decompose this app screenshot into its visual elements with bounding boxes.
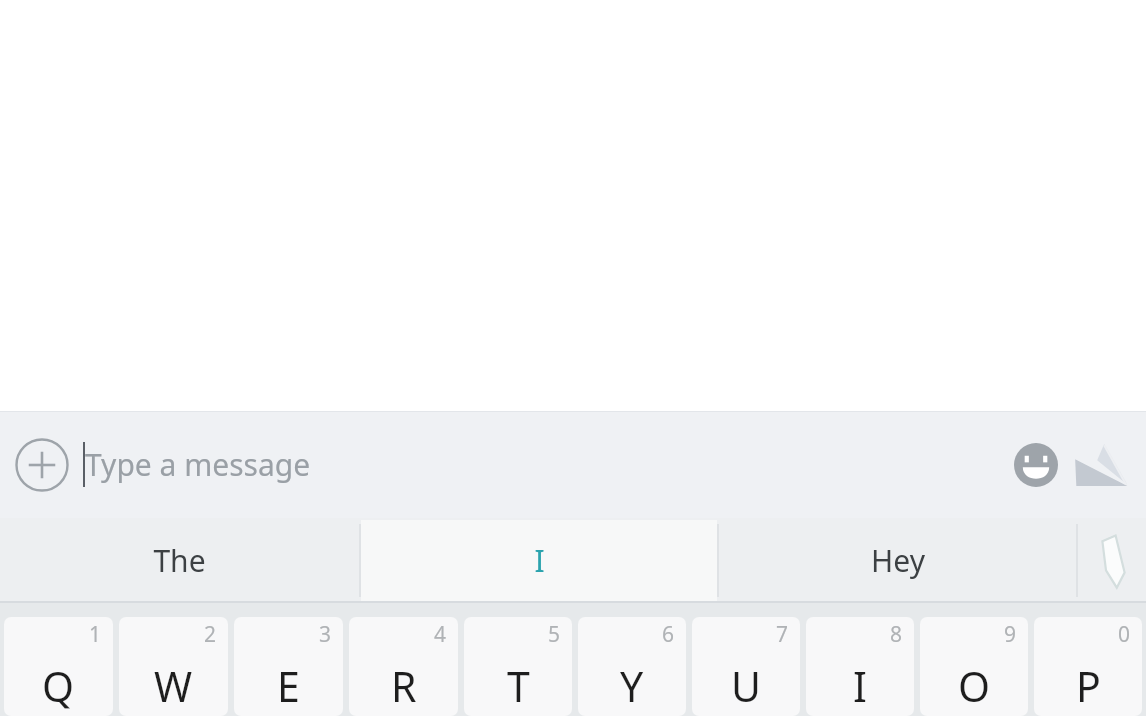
button[interactable]: 0	[1034, 617, 1142, 716]
button[interactable]: Handwriting	[1078, 518, 1146, 603]
staticText: I	[853, 658, 867, 714]
button[interactable]: 2	[119, 617, 228, 716]
staticText: 6	[662, 620, 675, 649]
button[interactable]: Attach	[15, 438, 69, 492]
button[interactable]: Type a message	[83, 411, 1004, 518]
button[interactable]: 9	[920, 617, 1028, 716]
staticText: 1	[89, 620, 102, 649]
button[interactable]: 7	[692, 617, 800, 716]
staticText: Hey	[871, 540, 925, 581]
button[interactable]: Send	[1068, 426, 1138, 504]
staticText: 4	[434, 620, 447, 649]
button[interactable]: 5	[464, 617, 572, 716]
button[interactable]: 6	[578, 617, 686, 716]
staticText: 5	[548, 620, 561, 649]
button[interactable]: The	[0, 518, 359, 603]
staticText: U	[731, 658, 761, 714]
staticText: 3	[319, 620, 332, 649]
button[interactable]: I	[361, 520, 717, 601]
button[interactable]: Emoji	[1004, 433, 1068, 497]
staticText: W	[154, 658, 193, 714]
staticText: Type a message	[85, 444, 311, 485]
button[interactable]: 8	[806, 617, 914, 716]
button[interactable]: Hey	[719, 518, 1076, 603]
staticText: 0	[1118, 620, 1131, 649]
staticText: Q	[42, 658, 75, 714]
staticText: R	[391, 658, 417, 714]
staticText: 7	[776, 620, 789, 649]
staticText: 2	[204, 620, 217, 649]
button[interactable]: 4	[349, 617, 458, 716]
staticText: I	[534, 540, 545, 581]
staticText: O	[958, 658, 991, 714]
staticText: 9	[1004, 620, 1017, 649]
staticText: T	[507, 658, 530, 714]
button[interactable]: 1	[4, 617, 113, 716]
staticText: 8	[890, 620, 903, 649]
button[interactable]: 3	[234, 617, 343, 716]
staticText: Y	[620, 658, 644, 714]
staticText: P	[1076, 658, 1101, 714]
staticText: The	[153, 540, 206, 581]
staticText: E	[277, 658, 300, 714]
